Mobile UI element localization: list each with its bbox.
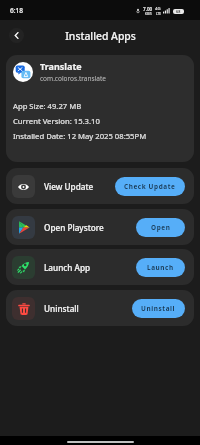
staticText: Installed Date: 12 May 2025 08:55PM — [13, 131, 147, 141]
staticText: 4G — [155, 6, 161, 12]
button[interactable]: Uninstall — [6, 290, 194, 326]
staticText: LTE — [156, 12, 161, 16]
staticText: com.coloros.translate — [40, 74, 106, 83]
button[interactable]: Open — [136, 218, 185, 237]
staticText: Open — [151, 223, 171, 232]
staticText: Installed Apps — [65, 29, 136, 43]
staticText: 6:18 — [10, 6, 24, 15]
button[interactable]: Check Update — [115, 177, 185, 196]
button[interactable]: View Update — [6, 168, 194, 204]
staticText: View Update — [44, 181, 94, 192]
staticText: 68 — [176, 9, 181, 14]
staticText: Uninstall — [141, 304, 176, 313]
staticText: Launch App — [44, 262, 91, 273]
button[interactable]: Launch — [136, 258, 185, 277]
staticText: 7.00 — [143, 6, 153, 12]
staticText: Launch — [147, 263, 174, 272]
staticText: App Size: 49.27 MB — [13, 101, 82, 111]
staticText: Check Update — [124, 182, 176, 191]
button[interactable]: Launch App — [6, 249, 194, 285]
staticText: KB/S — [145, 12, 152, 16]
staticText: Uninstall — [44, 303, 79, 314]
button[interactable]: Uninstall — [132, 299, 185, 318]
button[interactable]: Back — [9, 28, 24, 43]
staticText: Current Version: 15.3.10 — [13, 116, 100, 126]
staticText: Translate — [40, 60, 82, 72]
button[interactable]: Open Playstore — [6, 209, 194, 245]
staticText: Open Playstore — [44, 222, 104, 233]
